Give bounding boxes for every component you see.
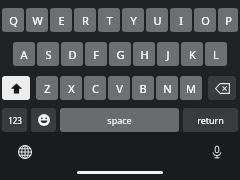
button[interactable]: V xyxy=(108,76,130,100)
button[interactable]: T xyxy=(98,8,120,32)
staticText: R xyxy=(82,13,89,28)
staticText: E xyxy=(58,13,65,28)
staticText: P xyxy=(225,13,232,28)
button[interactable]: O xyxy=(194,8,216,32)
staticText: F xyxy=(93,47,99,62)
staticText: W xyxy=(32,13,43,28)
button[interactable]: E xyxy=(50,8,72,32)
button[interactable]: U xyxy=(146,8,168,32)
button[interactable]: S xyxy=(37,42,59,66)
button[interactable]: I xyxy=(170,8,192,32)
button[interactable]: F xyxy=(85,42,107,66)
staticText: J xyxy=(166,47,170,62)
button[interactable]: K xyxy=(181,42,203,66)
staticText: G xyxy=(116,47,125,62)
button[interactable]: Dictation xyxy=(206,141,228,163)
staticText: X xyxy=(68,81,75,96)
button[interactable]: A xyxy=(13,42,35,66)
button[interactable]: R xyxy=(74,8,96,32)
button[interactable]: Z xyxy=(36,76,58,100)
button[interactable]: C xyxy=(84,76,106,100)
staticText: K xyxy=(189,47,196,62)
button[interactable]: Shift xyxy=(2,76,30,100)
button[interactable]: Change keyboard language xyxy=(14,141,36,163)
button[interactable]: return xyxy=(183,108,238,132)
staticText: C xyxy=(92,81,99,96)
button[interactable]: W xyxy=(26,8,48,32)
button[interactable]: J xyxy=(157,42,179,66)
staticText: V xyxy=(116,81,123,96)
staticText: U xyxy=(153,13,162,28)
staticText: Q xyxy=(9,13,18,28)
staticText: T xyxy=(106,13,113,28)
button[interactable]: M xyxy=(180,76,202,100)
staticText: Y xyxy=(130,13,137,28)
staticText: B xyxy=(139,81,147,96)
staticText: M xyxy=(186,81,196,96)
button[interactable]: H xyxy=(133,42,155,66)
button[interactable]: G xyxy=(109,42,131,66)
button[interactable]: L xyxy=(205,42,227,66)
staticText: N xyxy=(163,81,172,96)
button[interactable]: X xyxy=(60,76,82,100)
staticText: 123 xyxy=(8,115,22,126)
staticText: D xyxy=(68,47,77,62)
staticText: O xyxy=(201,13,210,28)
button[interactable]: B xyxy=(132,76,154,100)
button[interactable]: 123 xyxy=(2,108,27,132)
staticText: A xyxy=(20,47,28,62)
button[interactable]: N xyxy=(156,76,178,100)
staticText: H xyxy=(140,47,149,62)
button[interactable]: Emoji xyxy=(31,108,56,132)
staticText: Z xyxy=(44,81,51,96)
staticText: space xyxy=(107,114,132,126)
button[interactable]: Q xyxy=(2,8,24,32)
button[interactable]: Delete xyxy=(208,76,236,100)
staticText: L xyxy=(213,47,219,62)
staticText: I xyxy=(179,13,183,28)
button[interactable]: space xyxy=(60,108,179,132)
button[interactable]: Y xyxy=(122,8,144,32)
staticText: S xyxy=(45,47,52,62)
button[interactable]: D xyxy=(61,42,83,66)
staticText: return xyxy=(197,114,224,126)
button[interactable]: P xyxy=(218,8,238,32)
